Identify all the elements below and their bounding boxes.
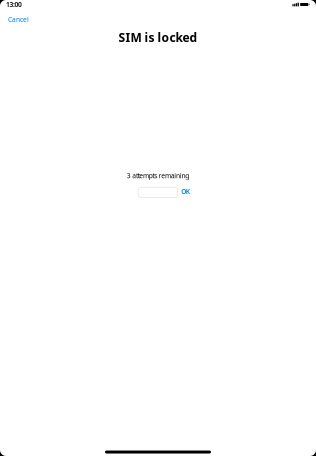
staticText: 13:00 xyxy=(6,0,22,9)
staticText: Cancel xyxy=(8,15,29,24)
button[interactable]: Cancel xyxy=(7,13,30,26)
staticText: SIM is locked xyxy=(118,29,197,45)
staticText: 3 attempts remaining xyxy=(127,171,189,180)
staticText: OK xyxy=(181,187,190,196)
button[interactable]: OK xyxy=(180,186,191,199)
